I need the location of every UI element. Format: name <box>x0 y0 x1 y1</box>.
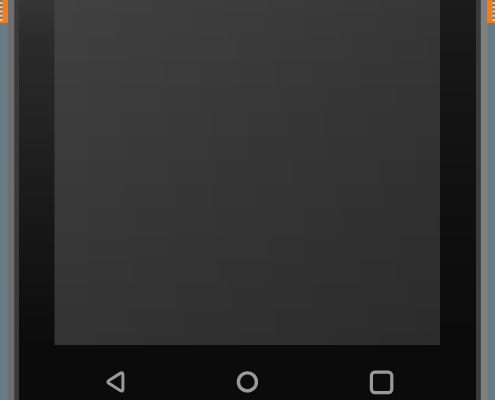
button[interactable]: Recent apps <box>361 362 401 400</box>
button[interactable]: Bookmark tab left <box>0 0 8 23</box>
button[interactable]: Back <box>95 362 135 400</box>
button[interactable]: Home <box>227 362 267 400</box>
button[interactable]: Bookmark tab right <box>487 0 495 23</box>
